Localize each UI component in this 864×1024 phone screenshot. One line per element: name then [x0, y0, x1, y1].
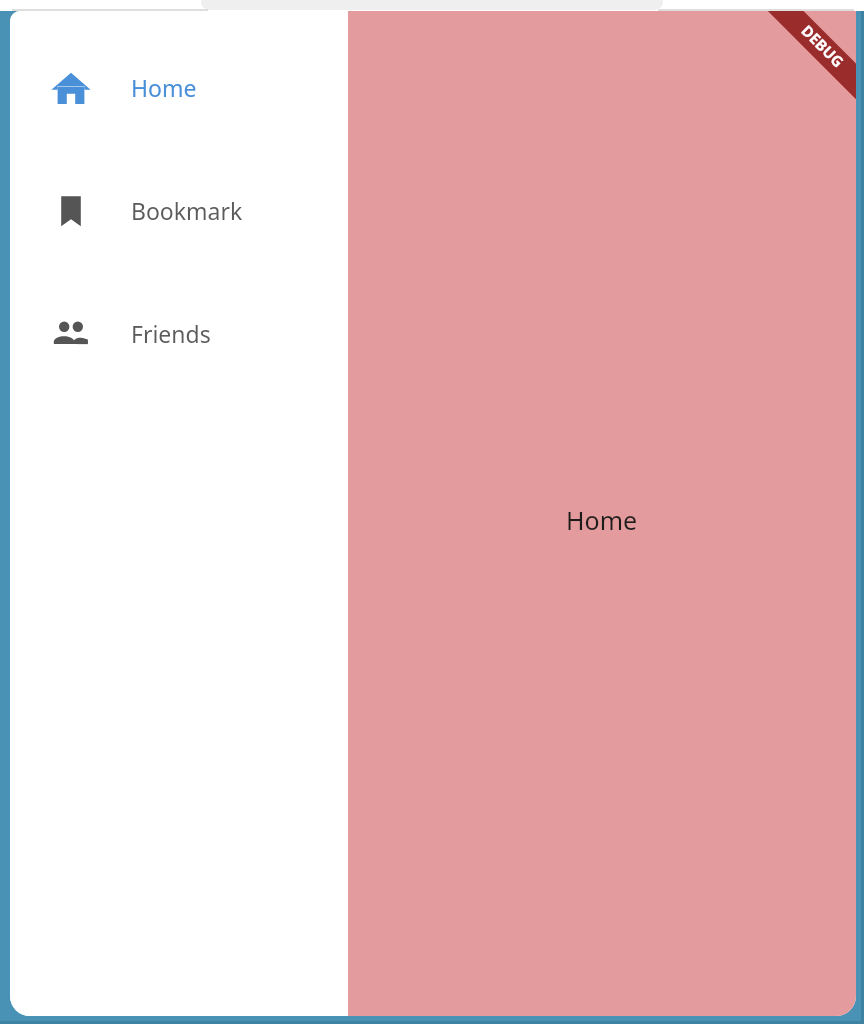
- button[interactable]: Home: [10, 26, 348, 149]
- button[interactable]: Bookmark: [10, 149, 348, 272]
- button[interactable]: Friends: [10, 272, 348, 395]
- staticText: Home: [566, 503, 638, 537]
- staticText: Home: [131, 72, 197, 103]
- other: Debug banner: [751, 11, 856, 116]
- staticText: Friends: [131, 318, 211, 349]
- staticText: DEBUG: [797, 20, 848, 71]
- staticText: Bookmark: [131, 195, 243, 226]
